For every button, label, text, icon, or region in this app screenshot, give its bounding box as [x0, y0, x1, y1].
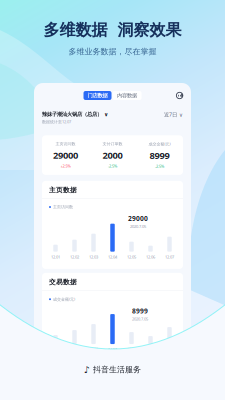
staticText: ♪ [84, 364, 90, 375]
staticText: 多维数据 洞察效果 [43, 20, 181, 40]
staticText: +2.5% [60, 163, 70, 169]
button[interactable]: 内容数据 [112, 91, 141, 100]
staticText: 主页访问数 [53, 205, 73, 209]
staticText: 成交金额(元) [148, 141, 170, 147]
staticText: 8999 [132, 306, 148, 315]
staticText: 12.02 [70, 254, 79, 259]
staticText: 12.05 [127, 347, 136, 352]
staticText: 门店数据 [87, 92, 107, 99]
staticText: 8999 [149, 149, 169, 162]
staticText: 成交金额(元) [53, 297, 75, 302]
staticText: 内容数据 [117, 92, 137, 99]
staticText: 交易数据 [49, 278, 77, 286]
staticText: 数据统计至12.07 [42, 119, 71, 124]
staticText: 12.05 [127, 254, 136, 259]
button[interactable]: Customer service [176, 91, 184, 99]
staticText: 2020.7.05 [132, 316, 148, 321]
staticText: 近7日 ∨ [164, 111, 183, 118]
staticText: 主页访问数 [55, 142, 75, 146]
staticText: 2000 [102, 149, 122, 161]
staticText: 多维业务数据，尽在掌握 [68, 47, 156, 56]
staticText: 12.03 [89, 254, 98, 259]
staticText: -2.5% [155, 164, 164, 169]
staticText: 支付订单数 [102, 142, 122, 146]
staticText: 12.06 [146, 254, 155, 259]
staticText: 12.07 [165, 254, 174, 259]
staticText: 12.04 [108, 254, 117, 259]
staticText: -2.5% [108, 163, 117, 169]
staticText: 29000 [128, 214, 148, 223]
staticText: 12.04 [108, 347, 117, 352]
staticText: 12.01 [51, 254, 60, 259]
staticText: 辣妹子潮汕火锅店（总店） ∨ [42, 111, 108, 118]
staticText: 2020.7.05 [130, 224, 146, 229]
button[interactable]: 门店数据 [83, 91, 111, 100]
staticText: 主页数据 [49, 186, 77, 194]
staticText: 12.03 [89, 347, 98, 352]
staticText: 29000 [53, 149, 78, 161]
staticText: 抖音生活服务 [93, 365, 141, 375]
